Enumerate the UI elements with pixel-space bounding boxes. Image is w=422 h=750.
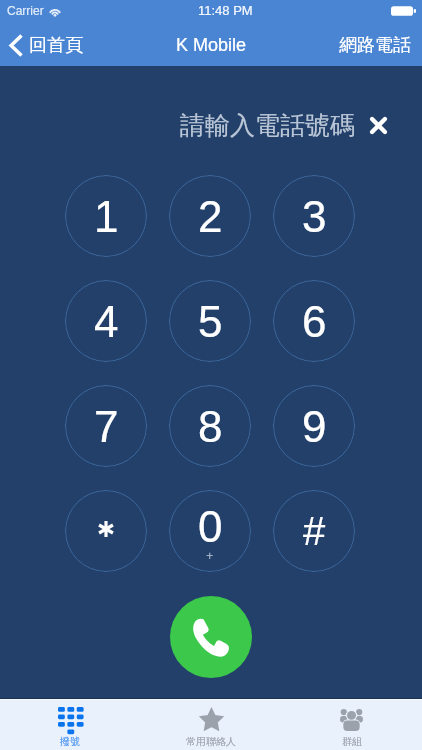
staticText: 常用聯絡人	[186, 735, 236, 748]
staticText: 6	[302, 297, 327, 346]
staticText: 4	[94, 297, 119, 346]
staticText: 1	[94, 192, 119, 241]
button[interactable]: Call	[170, 596, 252, 678]
button[interactable]: 6	[273, 280, 355, 362]
staticText: 11:48 PM	[198, 3, 253, 18]
staticText: +	[206, 546, 214, 564]
staticText: 3	[302, 192, 327, 241]
button[interactable]	[65, 490, 147, 572]
staticText: 0	[198, 502, 223, 551]
button[interactable]: 8	[169, 385, 251, 467]
button[interactable]: 網路電話	[329, 30, 422, 61]
staticText: 網路電話	[339, 34, 411, 57]
button[interactable]: 0	[169, 490, 251, 572]
staticText: 9	[302, 402, 327, 451]
staticText: 5	[198, 297, 223, 346]
staticText: 7	[94, 402, 119, 451]
staticText: 8	[198, 402, 223, 451]
button[interactable]: 2	[169, 175, 251, 257]
staticText: Carrier	[7, 4, 44, 17]
button[interactable]: 5	[169, 280, 251, 362]
button[interactable]: 回首頁	[0, 30, 93, 61]
button[interactable]: 9	[273, 385, 355, 467]
button[interactable]: 常用聯絡人	[140, 700, 281, 750]
staticText: K Mobile	[176, 35, 247, 55]
staticText: 撥號	[60, 735, 80, 748]
button[interactable]: 4	[65, 280, 147, 362]
staticText: 2	[198, 192, 223, 241]
button[interactable]: Clear	[368, 115, 388, 135]
button[interactable]: 7	[65, 385, 147, 467]
staticText: 群組	[342, 735, 362, 748]
button[interactable]: #	[273, 490, 355, 572]
button[interactable]: 群組	[281, 700, 422, 750]
button[interactable]: 撥號	[0, 700, 140, 750]
staticText: 請輸入電話號碼	[180, 110, 355, 140]
button[interactable]: 1	[65, 175, 147, 257]
staticText: #	[303, 509, 326, 554]
staticText: 回首頁	[29, 34, 83, 57]
button[interactable]: 3	[273, 175, 355, 257]
